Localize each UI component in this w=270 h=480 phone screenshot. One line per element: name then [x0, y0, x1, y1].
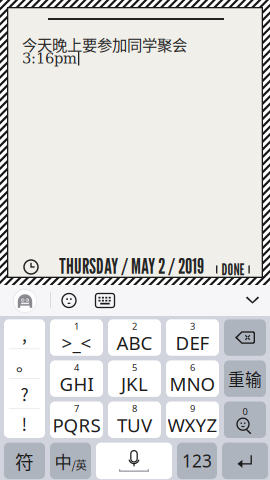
- button[interactable]: Hide keyboard: [238, 286, 266, 314]
- button[interactable]: 4: [50, 360, 103, 397]
- staticText: 9: [190, 402, 195, 415]
- button[interactable]: 。: [4, 349, 45, 378]
- button[interactable]: 符: [4, 443, 45, 479]
- staticText: TUV: [117, 413, 152, 437]
- staticText: 123: [182, 449, 212, 472]
- staticText: ?: [20, 381, 28, 406]
- button[interactable]: 0: [224, 401, 266, 438]
- staticText: 重输: [228, 367, 262, 391]
- button[interactable]: 3: [166, 319, 219, 356]
- button[interactable]: ,: [4, 319, 45, 348]
- button[interactable]: 123: [177, 443, 217, 479]
- staticText: 3: [190, 320, 195, 332]
- button[interactable]: [96, 443, 172, 479]
- staticText: PQRS: [52, 413, 100, 437]
- button[interactable]: 8: [108, 401, 161, 438]
- staticText: >_<: [61, 330, 91, 355]
- button[interactable]: 5: [108, 360, 161, 397]
- button[interactable]: 重输: [224, 360, 266, 397]
- staticText: 4: [74, 361, 79, 373]
- staticText: !: [21, 411, 27, 436]
- staticText: 0: [242, 405, 247, 418]
- button[interactable]: 6: [166, 360, 219, 397]
- staticText: 3:16pm: [22, 50, 77, 67]
- staticText: 中: [54, 448, 71, 473]
- button[interactable]: 2: [108, 319, 161, 356]
- button[interactable]: [222, 443, 268, 479]
- staticText: 符: [15, 447, 34, 474]
- staticText: THURSDAY / MAY 2 / 2019: [59, 254, 204, 279]
- button[interactable]: Emoji: [56, 287, 82, 313]
- staticText: DEF: [175, 330, 209, 355]
- staticText: WXYZ: [167, 413, 217, 437]
- staticText: 6: [190, 361, 195, 373]
- staticText: 5: [132, 361, 137, 373]
- button[interactable]: 中: [50, 443, 91, 479]
- button[interactable]: ?: [4, 379, 45, 408]
- button[interactable]: 7: [50, 401, 103, 438]
- staticText: /英: [71, 456, 86, 473]
- staticText: DONE: [221, 260, 244, 279]
- staticText: 1: [74, 320, 79, 332]
- button[interactable]: [224, 319, 266, 356]
- button[interactable]: 9: [166, 401, 219, 438]
- staticText: ABC: [116, 330, 152, 355]
- staticText: JKL: [121, 371, 148, 396]
- staticText: 7: [74, 402, 79, 415]
- button[interactable]: !: [4, 409, 45, 438]
- staticText: 8: [132, 402, 137, 415]
- button[interactable]: 1: [50, 319, 103, 356]
- staticText: 2: [132, 320, 137, 332]
- staticText: MNO: [169, 371, 215, 396]
- button[interactable]: Keyboard layout: [92, 287, 118, 313]
- staticText: 今天晚上要参加同学聚会: [22, 33, 187, 55]
- button[interactable]: Input method: [11, 287, 39, 315]
- staticText: 。: [16, 351, 33, 376]
- staticText: GHI: [59, 371, 93, 396]
- staticText: ,: [22, 321, 27, 346]
